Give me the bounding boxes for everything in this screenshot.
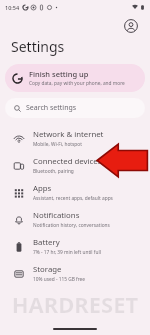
staticText: Notification history, conversations bbox=[33, 222, 110, 229]
button[interactable]: Battery bbox=[0, 233, 150, 260]
button[interactable]: Storage bbox=[0, 260, 150, 287]
button[interactable]: Notifications bbox=[0, 206, 150, 233]
staticText: 7% - 17 hr, 39 min left until full bbox=[33, 249, 101, 256]
staticText: Search settings bbox=[26, 103, 77, 113]
staticText: Connected devices bbox=[33, 156, 102, 167]
staticText: Battery bbox=[33, 237, 60, 248]
staticText: Settings bbox=[11, 37, 65, 56]
staticText: Copy data, pay with your phone, and more bbox=[29, 80, 125, 87]
staticText: Notifications bbox=[33, 210, 80, 221]
button[interactable]: Account bbox=[122, 17, 140, 35]
staticText: HARDRESET bbox=[0, 289, 150, 319]
button[interactable]: Finish setting up bbox=[5, 64, 145, 92]
staticText: Bluetooth, pairing bbox=[33, 168, 74, 175]
staticText: Storage bbox=[33, 264, 62, 275]
staticText: Assistant, recent apps, default apps bbox=[33, 195, 113, 202]
button[interactable]: Search settings bbox=[5, 98, 145, 118]
staticText: 10% used - 115 GB free bbox=[33, 276, 85, 283]
staticText: Network & internet bbox=[33, 129, 104, 140]
button[interactable]: Connected devices bbox=[0, 152, 150, 179]
button[interactable]: Apps bbox=[0, 179, 150, 206]
button[interactable]: Network & internet bbox=[0, 125, 150, 152]
staticText: Apps bbox=[33, 183, 52, 194]
staticText: Finish setting up bbox=[29, 69, 89, 79]
staticText: Mobile, Wi-Fi, hotspot bbox=[33, 141, 82, 148]
staticText: 10:54 bbox=[5, 4, 20, 11]
